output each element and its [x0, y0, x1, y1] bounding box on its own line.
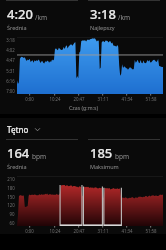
staticText: Najlepszy	[90, 24, 115, 31]
staticText: 4:47	[6, 57, 15, 63]
staticText: 41:34	[121, 228, 133, 234]
staticText: 51:58	[145, 228, 157, 234]
staticText: Średnia	[7, 163, 27, 170]
button[interactable]: 4:20	[0, 1, 83, 34]
button[interactable]: 185	[83, 140, 166, 173]
staticText: 20:47	[73, 96, 85, 102]
staticText: 210	[7, 176, 15, 182]
staticText: 90	[9, 211, 15, 217]
staticText: 31:11	[97, 96, 109, 102]
button[interactable]: Tętno	[0, 123, 166, 137]
other: Expand metric selector	[34, 126, 41, 133]
staticText: 0:00	[25, 96, 34, 102]
staticText: 60	[9, 220, 15, 226]
staticText: 20:47	[73, 228, 85, 234]
staticText: Czas (g:m:s)	[69, 104, 98, 111]
staticText: Średnia	[7, 24, 27, 31]
staticText: /km	[35, 13, 47, 22]
staticText: 4:20	[7, 5, 33, 23]
staticText: 164	[7, 144, 30, 162]
staticText: 31:11	[97, 228, 109, 234]
staticText: 0:00	[25, 228, 34, 234]
staticText: 51:58	[145, 96, 157, 102]
staticText: 4:02	[6, 47, 15, 53]
staticText: 41:34	[121, 96, 133, 102]
staticText: 150	[7, 194, 15, 200]
staticText: 6:16	[6, 78, 15, 84]
staticText: 10:24	[49, 228, 61, 234]
staticText: 10:24	[49, 96, 61, 102]
staticText: 3:18	[90, 5, 116, 23]
staticText: Tętno	[7, 124, 29, 135]
staticText: 120	[7, 202, 15, 208]
button[interactable]: 3:18	[83, 1, 166, 34]
staticText: 180	[7, 185, 15, 191]
button[interactable]: 164	[0, 140, 83, 173]
staticText: 5:31	[6, 68, 15, 74]
staticText: /km	[118, 13, 130, 22]
staticText: 3:18	[6, 37, 15, 43]
staticText: bpm	[32, 152, 47, 161]
staticText: 185	[90, 144, 113, 162]
staticText: bpm	[115, 152, 130, 161]
staticText: 7:00	[6, 88, 15, 94]
staticText: Maksimum	[90, 163, 119, 170]
